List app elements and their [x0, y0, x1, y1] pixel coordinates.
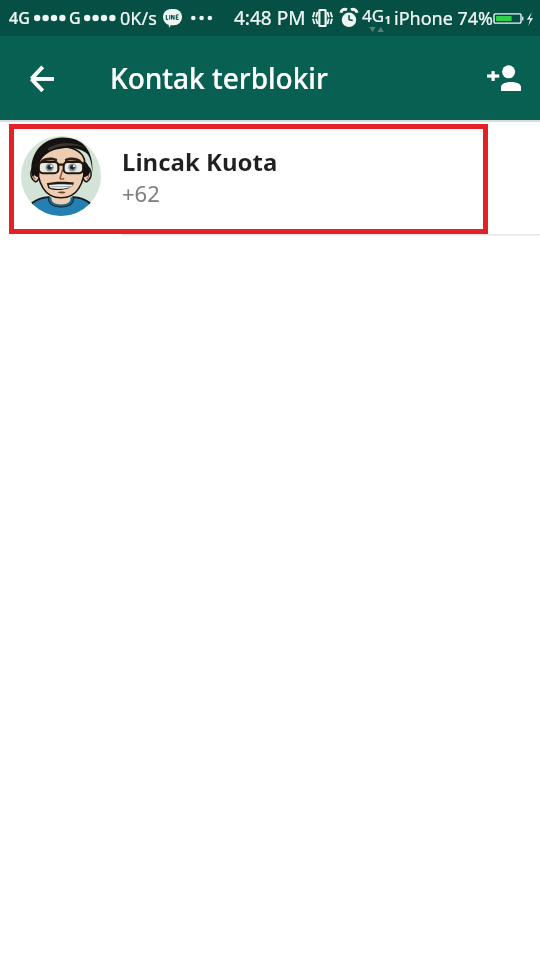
staticText: 1 — [385, 13, 391, 27]
button[interactable]: Add blocked contact — [468, 36, 540, 120]
staticText: +62 — [122, 178, 160, 208]
staticText: G — [69, 7, 81, 29]
staticText: 4:48 PM — [234, 5, 306, 31]
staticText: iPhone 74% — [394, 6, 494, 31]
button[interactable]: Back — [0, 36, 84, 120]
staticText: 4G — [362, 4, 385, 27]
staticText: 4G — [9, 7, 30, 29]
staticText: Kontak terblokir — [110, 59, 328, 97]
staticText: 0K/s — [120, 6, 157, 31]
button[interactable]: Lincak Kuota — [0, 122, 540, 229]
staticText: Lincak Kuota — [122, 145, 278, 178]
